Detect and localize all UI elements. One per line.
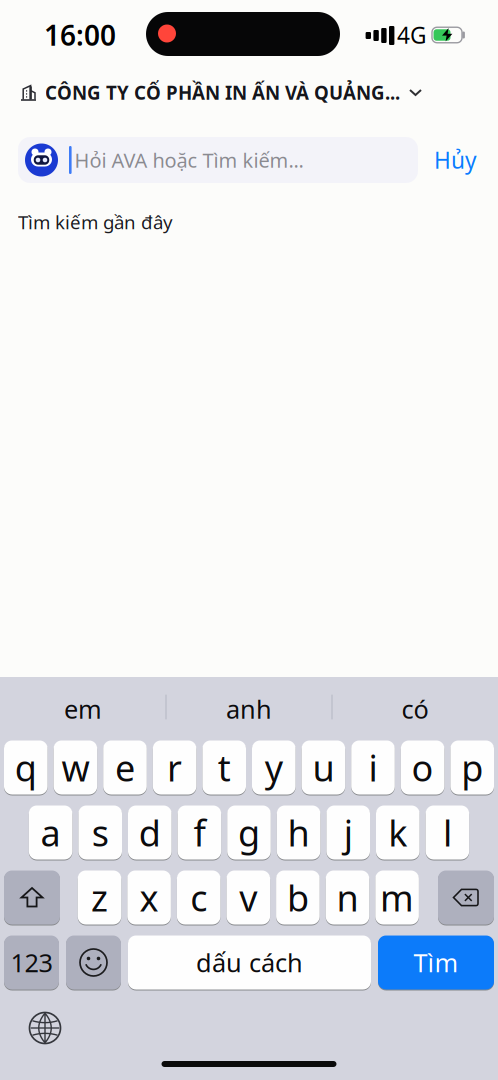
staticText: q	[15, 744, 37, 791]
button[interactable]: d	[128, 805, 172, 859]
staticText: m	[380, 874, 414, 921]
button[interactable]: Shift	[4, 870, 60, 924]
button[interactable]: g	[227, 805, 271, 859]
staticText: v	[239, 874, 257, 921]
staticText: w	[61, 744, 89, 791]
staticText: 16:00	[44, 16, 116, 54]
button[interactable]: b	[276, 870, 320, 924]
button[interactable]: y	[252, 740, 296, 794]
staticText: x	[140, 874, 159, 921]
staticText: y	[265, 744, 283, 791]
button[interactable]: p	[450, 740, 494, 794]
button[interactable]: i	[351, 740, 395, 794]
staticText: Tìm	[413, 946, 458, 979]
staticText: s	[92, 809, 109, 856]
staticText: dấu cách	[196, 946, 303, 979]
button[interactable]: c	[177, 870, 220, 924]
staticText: g	[238, 809, 260, 856]
button[interactable]: có	[332, 677, 498, 737]
button[interactable]: n	[326, 870, 369, 924]
button[interactable]: Tìm	[378, 935, 494, 989]
staticText: z	[91, 874, 108, 921]
staticText: Tìm kiếm gần đây	[18, 210, 173, 234]
staticText: n	[336, 874, 358, 921]
button[interactable]: o	[401, 740, 444, 794]
button[interactable]: h	[277, 805, 320, 859]
staticText: anh	[226, 692, 272, 726]
staticText: d	[139, 809, 161, 856]
staticText: l	[443, 809, 452, 856]
button[interactable]: e	[103, 740, 147, 794]
button[interactable]: CÔNG TY CỔ PHẦN IN ẤN VÀ QUẢNG...	[0, 76, 498, 109]
staticText: Hủy	[434, 145, 477, 175]
staticText: j	[344, 809, 353, 856]
button[interactable]: Next keyboard	[29, 1012, 60, 1043]
staticText: c	[190, 874, 207, 921]
button[interactable]: v	[226, 870, 270, 924]
staticText: 4G	[397, 20, 427, 50]
staticText: 123	[10, 946, 52, 979]
button[interactable]: k	[376, 805, 420, 859]
button[interactable]: z	[78, 870, 121, 924]
button[interactable]: q	[4, 740, 48, 794]
button[interactable]: 123	[4, 935, 59, 989]
staticText: r	[167, 744, 182, 791]
staticText: f	[193, 809, 205, 856]
staticText: em	[64, 692, 102, 726]
button[interactable]: m	[375, 870, 419, 924]
button[interactable]: j	[326, 805, 370, 859]
staticText: Hỏi AVA hoặc Tìm kiếm...	[75, 147, 304, 173]
button[interactable]: r	[153, 740, 196, 794]
button[interactable]: Hủy	[434, 145, 477, 175]
button[interactable]: u	[302, 740, 345, 794]
staticText: CÔNG TY CỔ PHẦN IN ẤN VÀ QUẢNG...	[45, 80, 400, 105]
button[interactable]: t	[202, 740, 246, 794]
staticText: p	[461, 744, 483, 791]
button[interactable]: w	[54, 740, 97, 794]
staticText: u	[312, 744, 334, 791]
button[interactable]: f	[178, 805, 221, 859]
staticText: e	[115, 744, 135, 791]
button[interactable]: s	[78, 805, 122, 859]
staticText: có	[401, 692, 428, 726]
button[interactable]: l	[426, 805, 469, 859]
button[interactable]: dấu cách	[128, 935, 371, 989]
staticText: i	[368, 744, 377, 791]
staticText: o	[412, 744, 434, 791]
staticText: k	[388, 809, 407, 856]
button[interactable]: Hỏi AVA hoặc Tìm kiếm...	[18, 137, 418, 183]
button[interactable]: Emoji	[66, 935, 121, 989]
staticText: h	[288, 809, 310, 856]
staticText: b	[287, 874, 309, 921]
button[interactable]: Delete	[438, 870, 494, 924]
staticText: a	[41, 809, 61, 856]
button[interactable]: x	[127, 870, 171, 924]
button[interactable]: em	[0, 677, 166, 737]
staticText: t	[218, 744, 231, 791]
button[interactable]: a	[29, 805, 72, 859]
button[interactable]: anh	[166, 677, 332, 737]
